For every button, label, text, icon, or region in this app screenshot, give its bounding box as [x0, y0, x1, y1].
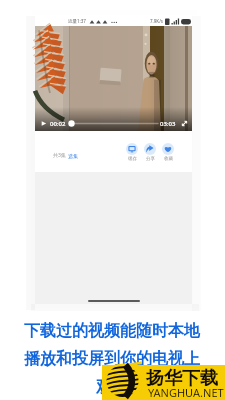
button[interactable]: 收藏	[162, 143, 174, 162]
button[interactable]: Play	[39, 119, 48, 128]
button[interactable]: 分享	[144, 143, 156, 162]
staticText: 共3集	[53, 152, 68, 159]
staticText: 分享	[146, 156, 155, 162]
staticText: 下载过的视频能随时本地播放和投屏到你的电视上观看	[23, 321, 201, 397]
button[interactable]: Fullscreen	[180, 119, 189, 128]
staticText: 03:03	[160, 120, 176, 128]
staticText: 缓存	[128, 156, 137, 162]
staticText: 收藏	[164, 156, 173, 162]
staticText: 00:02	[50, 120, 66, 128]
staticText: 7.9K/s	[150, 18, 163, 24]
staticText: 流量1:37	[68, 18, 86, 24]
staticText: YANGHUA.NET	[148, 385, 224, 400]
button[interactable]: 缓存	[126, 143, 138, 162]
staticText: 扬华下载	[146, 367, 218, 390]
staticText: 选集	[68, 153, 78, 159]
